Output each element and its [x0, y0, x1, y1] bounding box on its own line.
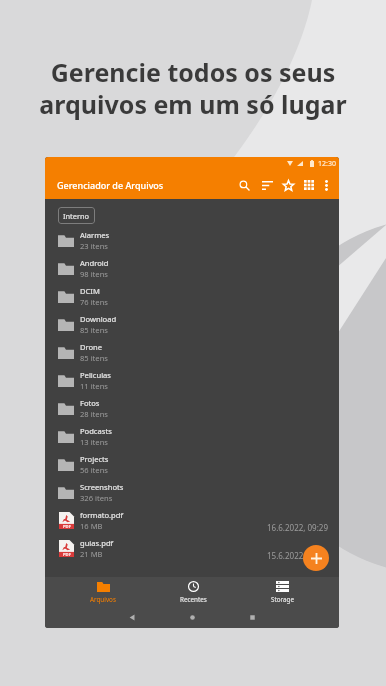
button[interactable]: Drone: [45, 338, 339, 366]
staticText: Download: [80, 314, 117, 324]
button[interactable]: Recents: [249, 614, 256, 621]
button[interactable]: Add: [303, 545, 329, 571]
button[interactable]: Favorites: [278, 172, 299, 198]
button[interactable]: Podcasts: [45, 422, 339, 450]
button[interactable]: PDF: [45, 506, 339, 534]
staticText: 13 itens: [80, 437, 108, 447]
staticText: 85 itens: [80, 325, 108, 335]
staticText: 98 itens: [80, 269, 108, 279]
button[interactable]: Fotos: [45, 394, 339, 422]
staticText: 16 MB: [80, 521, 103, 531]
staticText: Arquivos: [90, 595, 116, 604]
staticText: formato.pdf: [80, 510, 124, 520]
staticText: PDF: [63, 524, 71, 529]
staticText: 85 itens: [80, 353, 108, 363]
staticText: 23 itens: [80, 241, 108, 251]
staticText: 28 itens: [80, 409, 108, 419]
staticText: guias.pdf: [80, 538, 114, 548]
button[interactable]: Storage: [238, 581, 326, 604]
button[interactable]: Grid view: [299, 172, 318, 198]
staticText: 16.6.2022, 09:29: [267, 522, 328, 533]
staticText: 21 MB: [80, 549, 103, 559]
staticText: Peliculas: [80, 370, 111, 380]
button[interactable]: Back: [129, 614, 135, 621]
staticText: Podcasts: [80, 426, 112, 436]
staticText: Gerencie todos os seus arquivos em um só…: [39, 55, 347, 122]
button[interactable]: Search: [233, 172, 256, 198]
staticText: Projects: [80, 454, 109, 464]
button[interactable]: PDF: [45, 534, 339, 562]
button[interactable]: Home: [189, 614, 196, 621]
staticText: Android: [80, 258, 109, 268]
button[interactable]: Interno: [58, 207, 95, 224]
button[interactable]: Projects: [45, 450, 339, 478]
staticText: Alarmes: [80, 230, 110, 240]
staticText: PDF: [63, 552, 71, 557]
staticText: Gerenciador de Arquivos: [57, 179, 164, 191]
staticText: 11 itens: [80, 381, 108, 391]
button[interactable]: Peliculas: [45, 366, 339, 394]
staticText: 15.6.2022, 17:02: [267, 550, 328, 561]
button[interactable]: Recentes: [148, 581, 238, 604]
staticText: 326 itens: [80, 493, 113, 503]
button[interactable]: Screenshots: [45, 478, 339, 506]
button[interactable]: DCIM: [45, 282, 339, 310]
staticText: Recentes: [180, 595, 207, 604]
staticText: Drone: [80, 342, 103, 352]
staticText: Screenshots: [80, 482, 124, 492]
button[interactable]: Arquivos: [58, 581, 148, 604]
button[interactable]: More options: [318, 172, 334, 198]
button[interactable]: Alarmes: [45, 226, 339, 254]
staticText: Fotos: [80, 398, 100, 408]
staticText: 76 itens: [80, 297, 108, 307]
staticText: Storage: [271, 595, 294, 604]
staticText: 56 itens: [80, 465, 108, 475]
staticText: DCIM: [80, 286, 100, 296]
button[interactable]: Android: [45, 254, 339, 282]
staticText: 12:30: [318, 159, 336, 169]
button[interactable]: Download: [45, 310, 339, 338]
button[interactable]: Sort: [256, 172, 278, 198]
staticText: Interno: [63, 211, 90, 221]
